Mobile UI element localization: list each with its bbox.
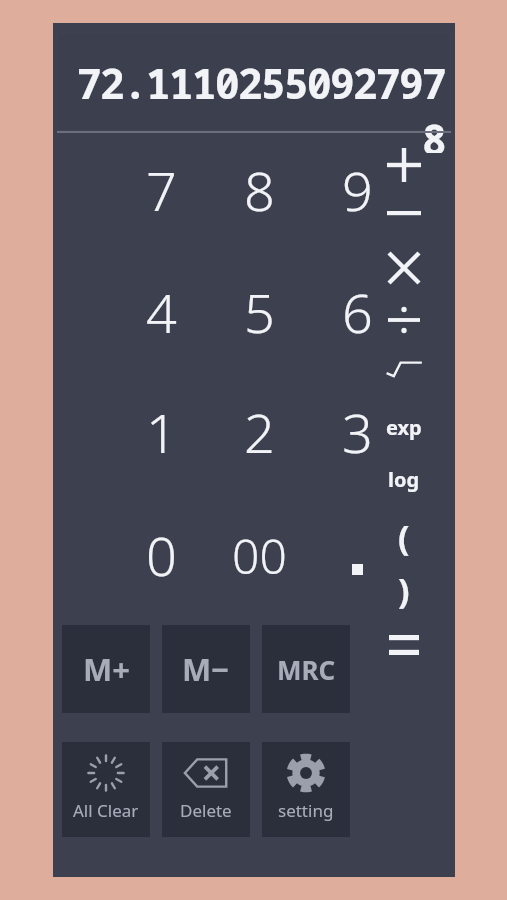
button[interactable]: operator (369, 621, 439, 669)
button[interactable]: operator (369, 296, 439, 344)
button[interactable]: 6 (309, 253, 405, 371)
staticText: 6 (342, 275, 373, 349)
button[interactable] (309, 496, 405, 614)
button[interactable]: 1 (113, 373, 209, 491)
button[interactable]: 8 (211, 131, 307, 249)
button[interactable]: operator (369, 141, 439, 189)
staticText: 5 (244, 275, 275, 349)
button[interactable]: log (369, 455, 439, 503)
staticText: MRC (277, 652, 336, 687)
staticText: Delete (180, 799, 232, 822)
button[interactable]: ) (369, 566, 439, 614)
staticText: setting (278, 799, 334, 822)
staticText: All Clear (73, 799, 139, 822)
staticText: 4 (146, 275, 177, 349)
staticText: 3 (342, 395, 373, 469)
button[interactable]: exp (369, 403, 439, 451)
button[interactable]: Settings (262, 742, 350, 837)
staticText: 00 (232, 523, 287, 588)
button[interactable]: operator (369, 189, 439, 237)
button[interactable]: M+ (62, 625, 150, 713)
button[interactable]: ( (369, 513, 439, 561)
staticText: 7 (146, 153, 177, 227)
button[interactable]: Clear all (62, 742, 150, 837)
staticText: 2 (244, 395, 275, 469)
button[interactable]: Delete (162, 742, 250, 837)
staticText: exp (386, 414, 422, 441)
staticText: ( (398, 514, 410, 560)
staticText: log (388, 466, 420, 493)
staticText: 8 (244, 153, 275, 227)
button[interactable]: M− (162, 625, 250, 713)
button[interactable]: MRC (262, 625, 350, 713)
button[interactable]: 00 (211, 496, 307, 614)
staticText: 1 (146, 395, 177, 469)
button[interactable]: operator (369, 349, 439, 397)
button[interactable]: 7 (113, 131, 209, 249)
button[interactable]: 4 (113, 253, 209, 371)
staticText: M− (182, 648, 230, 690)
button[interactable]: 9 (309, 131, 405, 249)
staticText: ) (398, 567, 410, 613)
button[interactable]: operator (369, 244, 439, 292)
staticText: 0 (146, 518, 177, 592)
button[interactable]: 3 (309, 373, 405, 491)
staticText: 9 (342, 153, 373, 227)
button[interactable]: 2 (211, 373, 307, 491)
staticText: M+ (83, 648, 130, 690)
button[interactable]: 0 (113, 496, 209, 614)
staticText: 72.11102550927978 (57, 55, 445, 153)
button[interactable]: 5 (211, 253, 307, 371)
